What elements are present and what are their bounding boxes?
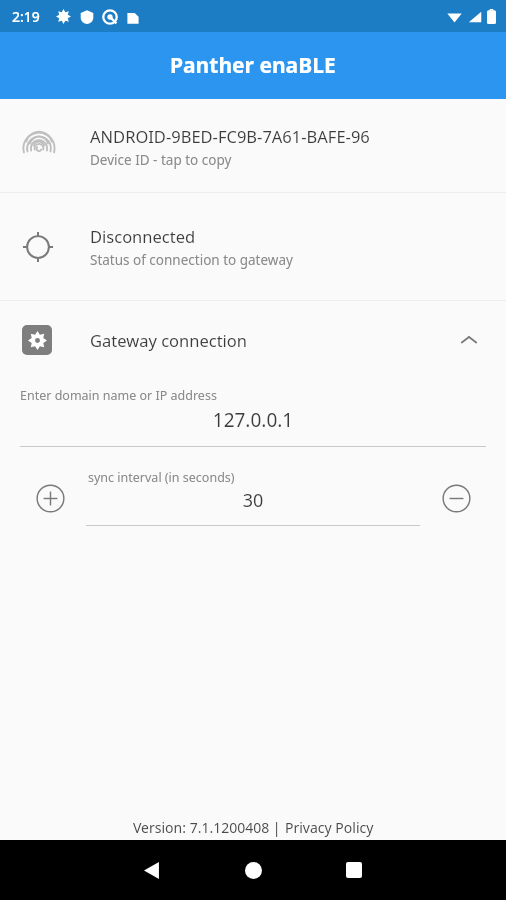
- staticText: 30: [86, 488, 420, 513]
- staticText: Disconnected: [90, 225, 196, 247]
- staticText: Device ID - tap to copy: [90, 151, 232, 169]
- button[interactable]: Back: [129, 847, 175, 893]
- staticText: Version: 7.1.1200408 |: [133, 818, 285, 837]
- button[interactable]: Decrease sync interval: [436, 478, 476, 518]
- staticText: Gateway connection: [90, 329, 452, 351]
- staticText: Panther enaBLE: [170, 51, 336, 80]
- button[interactable]: ANDROID-9BED-FC9B-7A61-BAFE-96: [0, 101, 506, 192]
- staticText: 127.0.0.1: [20, 407, 486, 433]
- staticText: ANDROID-9BED-FC9B-7A61-BAFE-96: [90, 125, 370, 147]
- button[interactable]: sync interval (in seconds): [86, 469, 420, 526]
- button[interactable]: Privacy Policy: [285, 818, 374, 837]
- staticText: Privacy Policy: [285, 818, 374, 837]
- staticText: 2:19: [12, 7, 40, 26]
- button[interactable]: Increase sync interval: [30, 478, 70, 518]
- button[interactable]: Home: [230, 847, 276, 893]
- button[interactable]: Gateway connection: [0, 301, 506, 379]
- button[interactable]: Disconnected: [0, 193, 506, 300]
- staticText: Status of connection to gateway: [90, 251, 293, 269]
- button[interactable]: Enter domain name or IP address: [0, 379, 506, 447]
- button[interactable]: Recent apps: [331, 847, 377, 893]
- button[interactable]: Collapse Gateway connection: [452, 323, 486, 357]
- staticText: Enter domain name or IP address: [20, 387, 217, 404]
- staticText: sync interval (in seconds): [88, 469, 235, 486]
